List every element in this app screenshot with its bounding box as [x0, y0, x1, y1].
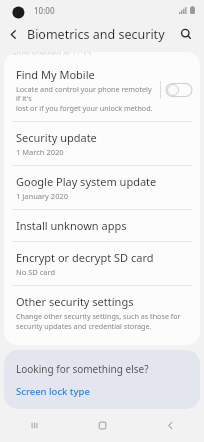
staticText: Looking for something else? [16, 362, 149, 376]
button[interactable]: Recents [0, 409, 68, 442]
staticText: 10:00 [34, 5, 55, 16]
staticText: Find My Mobile [16, 67, 95, 82]
button[interactable]: Find My Mobile toggle [166, 82, 192, 98]
staticText: Change other security settings, such as … [16, 311, 181, 321]
button[interactable]: Screen lock type [16, 385, 190, 397]
button[interactable]: Search [174, 22, 198, 46]
button[interactable]: Back [136, 409, 204, 442]
button[interactable]: Google Play system update [4, 166, 200, 209]
staticText: Apps scanned at 11:15 [12, 52, 92, 55]
staticText: Screen lock type [16, 385, 90, 397]
staticText: No SD card [16, 267, 56, 277]
staticText: Encrypt or decrypt SD card [16, 250, 154, 265]
button[interactable]: Find My Mobile [4, 59, 200, 121]
staticText: Security update [16, 130, 97, 145]
staticText: lost or if you forget your unlock method… [16, 103, 153, 113]
staticText: Locate and control your phone remotely i… [16, 84, 153, 103]
staticText: Other security settings [16, 294, 134, 309]
button[interactable]: Encrypt or decrypt SD card [4, 242, 200, 285]
button[interactable]: Back [0, 21, 26, 47]
staticText: Biometrics and security [27, 26, 165, 43]
staticText: 1 March 2020 [16, 147, 64, 157]
button[interactable]: Other security settings [4, 286, 200, 339]
staticText: 1 January 2020 [16, 191, 69, 201]
staticText: Install unknown apps [16, 218, 127, 233]
button[interactable]: Security update [4, 122, 200, 165]
staticText: Google Play system update [16, 174, 157, 189]
button[interactable]: Home [68, 409, 136, 442]
staticText: security updates and credential storage. [16, 321, 152, 331]
button[interactable]: Install unknown apps [4, 210, 200, 241]
